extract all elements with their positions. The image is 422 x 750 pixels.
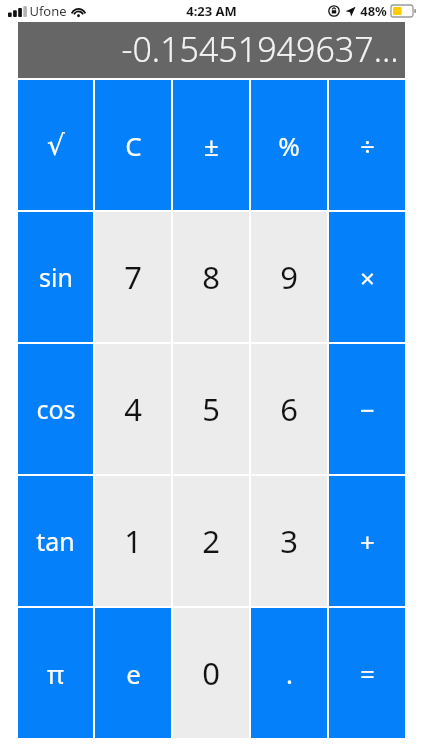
staticText: e: [126, 656, 141, 691]
button[interactable]: −: [329, 344, 405, 474]
staticText: sin: [39, 260, 73, 294]
button[interactable]: 1: [95, 476, 171, 606]
staticText: 3: [280, 520, 298, 562]
staticText: 9: [280, 256, 298, 298]
staticText: .: [286, 656, 293, 691]
staticText: Ufone: [29, 2, 67, 20]
button[interactable]: 3: [251, 476, 327, 606]
staticText: -0.15451949637…: [121, 26, 399, 72]
staticText: π: [47, 656, 64, 691]
button[interactable]: cos: [18, 344, 93, 474]
staticText: 0: [202, 652, 220, 694]
staticText: 6: [280, 388, 298, 430]
staticText: 5: [202, 388, 220, 430]
button[interactable]: π: [18, 608, 93, 738]
button[interactable]: 0: [173, 608, 249, 738]
staticText: 48%: [360, 2, 387, 20]
button[interactable]: sin: [18, 212, 93, 342]
button[interactable]: tan: [18, 476, 93, 606]
staticText: 1: [124, 520, 142, 562]
button[interactable]: =: [329, 608, 405, 738]
staticText: −: [360, 392, 375, 427]
button[interactable]: ±: [173, 80, 249, 210]
button[interactable]: 8: [173, 212, 249, 342]
button[interactable]: C: [95, 80, 171, 210]
staticText: ±: [204, 128, 219, 163]
button[interactable]: e: [95, 608, 171, 738]
staticText: √: [47, 129, 65, 162]
staticText: 2: [202, 520, 220, 562]
staticText: tan: [36, 524, 75, 558]
button[interactable]: 5: [173, 344, 249, 474]
button[interactable]: √: [18, 80, 93, 210]
staticText: ×: [360, 260, 375, 295]
button[interactable]: 2: [173, 476, 249, 606]
button[interactable]: ÷: [329, 80, 405, 210]
staticText: 4:23 AM: [186, 2, 237, 20]
staticText: 8: [202, 256, 220, 298]
staticText: 7: [124, 256, 142, 298]
staticText: cos: [36, 392, 76, 426]
button[interactable]: +: [329, 476, 405, 606]
button[interactable]: 4: [95, 344, 171, 474]
button[interactable]: 9: [251, 212, 327, 342]
staticText: C: [125, 128, 142, 163]
staticText: +: [360, 524, 375, 559]
staticText: %: [278, 128, 300, 163]
button[interactable]: 7: [95, 212, 171, 342]
button[interactable]: ×: [329, 212, 405, 342]
button[interactable]: 6: [251, 344, 327, 474]
staticText: 4: [124, 388, 142, 430]
button[interactable]: %: [251, 80, 327, 210]
button[interactable]: .: [251, 608, 327, 738]
staticText: ÷: [360, 128, 375, 163]
staticText: =: [360, 656, 375, 691]
